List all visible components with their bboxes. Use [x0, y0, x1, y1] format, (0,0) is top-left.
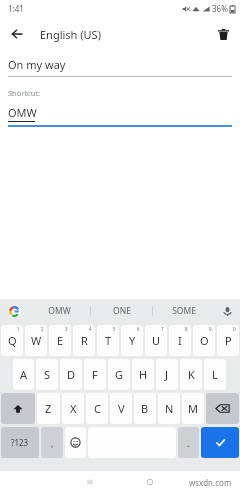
- staticText: X: [70, 401, 77, 416]
- button[interactable]: E: [49, 325, 71, 356]
- button[interactable]: C: [86, 393, 108, 424]
- button[interactable]: Emoji: [65, 427, 86, 458]
- staticText: 1:41: [8, 3, 24, 14]
- staticText: R: [81, 333, 88, 348]
- button[interactable]: B: [134, 393, 156, 424]
- staticText: Y: [129, 333, 136, 348]
- staticText: 6: [137, 326, 140, 332]
- staticText: 1: [17, 326, 20, 332]
- button[interactable]: ONE: [91, 299, 152, 323]
- button[interactable]: X: [62, 393, 84, 424]
- staticText: ?123: [11, 437, 29, 448]
- button[interactable]: P: [217, 325, 239, 356]
- staticText: .: [187, 437, 190, 449]
- staticText: 7: [161, 326, 164, 332]
- button[interactable]: M: [182, 393, 204, 424]
- button[interactable]: Back: [0, 17, 34, 51]
- button[interactable]: G: [108, 359, 130, 390]
- staticText: 3: [65, 326, 68, 332]
- staticText: OMW: [8, 105, 37, 120]
- staticText: G: [115, 367, 124, 382]
- staticText: V: [118, 401, 125, 416]
- button[interactable]: OMW: [28, 299, 90, 323]
- staticText: U: [152, 333, 161, 348]
- staticText: D: [67, 367, 76, 382]
- button[interactable]: On my way: [8, 57, 232, 77]
- staticText: A: [20, 367, 28, 382]
- staticText: O: [200, 333, 209, 348]
- staticText: OMW: [48, 305, 71, 317]
- button[interactable]: J: [156, 359, 178, 390]
- button[interactable]: U: [145, 325, 167, 356]
- staticText: English (US): [40, 27, 101, 42]
- button[interactable]: W: [25, 325, 47, 356]
- staticText: wsxdn.com: [189, 477, 232, 488]
- staticText: T: [105, 333, 112, 348]
- staticText: P: [225, 333, 232, 348]
- staticText: F: [92, 367, 98, 382]
- button[interactable]: Backspace: [206, 393, 239, 424]
- staticText: I: [178, 333, 182, 348]
- button[interactable]: Delete: [206, 17, 240, 51]
- button[interactable]: R: [73, 325, 95, 356]
- button[interactable]: A: [13, 359, 34, 390]
- staticText: Shortcut:: [8, 88, 41, 98]
- staticText: J: [165, 367, 169, 382]
- staticText: On my way: [8, 57, 66, 72]
- staticText: H: [139, 367, 148, 382]
- button[interactable]: Z: [37, 393, 60, 424]
- staticText: Z: [45, 401, 52, 416]
- staticText: 0: [233, 326, 236, 332]
- button[interactable]: O: [193, 325, 215, 356]
- staticText: L: [212, 367, 218, 382]
- button[interactable]: I: [169, 325, 191, 356]
- staticText: ,: [51, 437, 54, 449]
- staticText: 9: [209, 326, 212, 332]
- staticText: 2: [41, 326, 44, 332]
- button[interactable]: ,: [41, 427, 63, 458]
- button[interactable]: Google: [0, 299, 28, 323]
- button[interactable]: OMW: [8, 105, 232, 127]
- staticText: 4: [89, 326, 92, 332]
- button[interactable]: N: [158, 393, 180, 424]
- staticText: C: [94, 401, 101, 416]
- button[interactable]: Shift: [1, 393, 35, 424]
- button[interactable]: F: [84, 359, 106, 390]
- button[interactable]: Done: [201, 427, 239, 458]
- staticText: SOME: [172, 305, 196, 317]
- button[interactable]: ?123: [1, 427, 39, 458]
- staticText: W: [31, 333, 42, 348]
- staticText: B: [141, 401, 149, 416]
- button[interactable]: Home: [120, 471, 180, 493]
- staticText: E: [57, 333, 64, 348]
- staticText: ONE: [113, 305, 131, 317]
- button[interactable]: .: [178, 427, 199, 458]
- button[interactable]: V: [110, 393, 132, 424]
- button[interactable]: Voice input: [214, 299, 240, 323]
- button[interactable]: Q: [1, 325, 23, 356]
- staticText: 36%: [212, 3, 228, 14]
- button[interactable]: L: [204, 359, 226, 390]
- staticText: Q: [8, 333, 17, 348]
- staticText: N: [165, 401, 174, 416]
- button[interactable]: T: [97, 325, 119, 356]
- button[interactable]: SOME: [153, 299, 214, 323]
- button[interactable]: K: [180, 359, 202, 390]
- staticText: M: [188, 401, 198, 416]
- staticText: 8: [185, 326, 188, 332]
- button[interactable]: Y: [121, 325, 143, 356]
- button[interactable]: S: [36, 359, 58, 390]
- button[interactable]: D: [60, 359, 82, 390]
- button[interactable]: Recents: [60, 471, 120, 493]
- staticText: S: [44, 367, 51, 382]
- button[interactable]: H: [132, 359, 154, 390]
- staticText: 5: [113, 326, 116, 332]
- staticText: K: [188, 367, 195, 382]
